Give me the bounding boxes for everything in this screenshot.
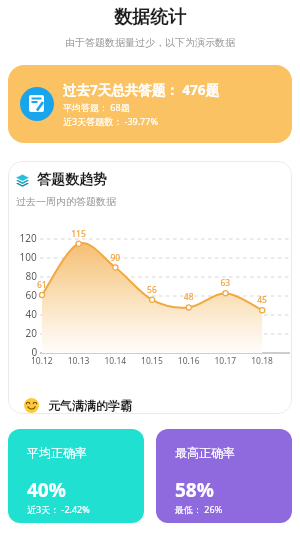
staticText: 过去7天总共答题： 476题 [63,81,219,99]
staticText: 最高正确率 [175,445,235,460]
button[interactable]: 过去7天总共答题： 476题 [8,65,292,143]
staticText: 平均正确率 [27,445,87,460]
staticText: 平均答题： 68题 [63,101,130,113]
staticText: 过去一周内的答题数据 [16,195,116,208]
button[interactable]: 平均正确率 [8,429,144,523]
staticText: 答题数趋势 [37,171,107,189]
staticText: 近3天答题数： -39.77% [63,115,158,127]
staticText: 最低： 26% [175,503,223,515]
staticText: 近3天： -2.42% [27,503,90,515]
staticText: 40% [27,477,66,503]
button[interactable]: 最高正确率 [156,429,292,523]
staticText: 由于答题数据量过少，以下为演示数据 [65,36,235,49]
staticText: 元气满满的学霸 [48,398,132,413]
staticText: 58% [175,477,214,503]
button[interactable]: 答题数趋势 [8,161,292,414]
staticText: 数据统计 [114,6,186,29]
